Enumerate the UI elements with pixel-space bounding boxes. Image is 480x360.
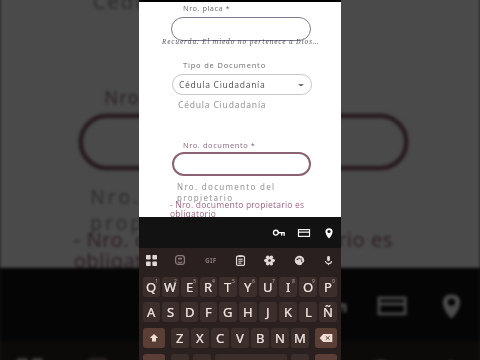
button[interactable]: D (181, 302, 198, 322)
staticText: Cédula Ciudadanía (178, 99, 267, 111)
button[interactable]: Clipboard (235, 255, 246, 266)
staticText: Recuerda: El miedo no pertenece a Dios… (162, 37, 320, 46)
button[interactable]: H (239, 302, 257, 322)
staticText: 8 (292, 278, 295, 285)
button[interactable]: N (271, 328, 289, 348)
staticText: A (147, 303, 156, 321)
staticText: O (303, 278, 314, 296)
staticText: X (196, 329, 204, 347)
button[interactable]: GIF (204, 254, 217, 267)
staticText: 4 (212, 278, 215, 285)
button[interactable]: Keyboard modes (17, 358, 43, 360)
button[interactable]: GIF (154, 356, 185, 360)
staticText: Nro. documento del propietario (90, 182, 325, 235)
staticText: 7 (272, 278, 275, 285)
staticText: Ñ (323, 303, 333, 321)
button[interactable]: Saved payment card (378, 292, 406, 320)
button[interactable]: Saved address (323, 227, 335, 239)
button[interactable]: C (211, 328, 229, 348)
button[interactable]: W (162, 277, 179, 297)
button[interactable]: Saved password (273, 227, 285, 239)
button[interactable]: Keyboard modes (146, 255, 157, 266)
staticText: T (224, 278, 232, 296)
button[interactable] (78, 113, 409, 170)
staticText: GIF (205, 256, 217, 265)
button[interactable]: P (319, 277, 337, 297)
button[interactable]: K (279, 302, 297, 322)
button[interactable]: Shift (143, 328, 165, 348)
button[interactable]: G (219, 302, 237, 322)
staticText: - Nro. documento propietario es obligato… (170, 199, 305, 219)
button[interactable]: M (291, 328, 309, 348)
staticText: U (263, 278, 273, 296)
button[interactable]: U (259, 277, 277, 297)
button[interactable]: Backspace (315, 328, 337, 348)
staticText: P (324, 278, 332, 296)
staticText: Nro. documento * (183, 140, 256, 150)
button[interactable]: Cédula Ciudadanía (172, 74, 312, 95)
staticText: K (284, 303, 293, 321)
staticText: Cédula Ciudadanía (179, 79, 266, 91)
button[interactable]: L (299, 302, 317, 322)
button[interactable]: Settings (297, 358, 323, 360)
button[interactable]: Theme (294, 255, 305, 266)
button[interactable]: Symbols (143, 354, 165, 360)
button[interactable]: S (162, 302, 179, 322)
staticText: Z (176, 329, 184, 347)
staticText: Nro. documento del propietario (177, 181, 276, 203)
button[interactable]: T (219, 277, 237, 297)
button[interactable]: B (251, 328, 269, 348)
button[interactable]: Settings (264, 255, 275, 266)
button[interactable]: I (279, 277, 297, 297)
button[interactable]: Saved address (437, 292, 466, 320)
button[interactable]: Stickers (86, 358, 109, 360)
staticText: 9 (312, 278, 315, 285)
button[interactable]: J (259, 302, 277, 322)
staticText: 6 (252, 278, 255, 285)
staticText: M (294, 329, 306, 347)
button[interactable] (171, 17, 311, 41)
button[interactable] (172, 152, 311, 176)
button[interactable]: F (200, 302, 217, 322)
button[interactable]: Enter (315, 354, 337, 360)
button[interactable]: R (200, 277, 217, 297)
staticText: Q (146, 278, 157, 296)
staticText: G (223, 303, 233, 321)
button[interactable]: O (299, 277, 317, 297)
button[interactable]: A (143, 302, 160, 322)
staticText: Nro. documento * (105, 85, 278, 109)
staticText: 2 (174, 278, 177, 285)
staticText: R (204, 278, 213, 296)
button[interactable]: Voice input (323, 255, 334, 266)
staticText: Tipo de Documento (183, 60, 266, 70)
staticText: Y (244, 278, 252, 296)
button[interactable]: E (181, 277, 198, 297)
button[interactable]: Q (143, 277, 160, 297)
button[interactable]: V (231, 328, 249, 348)
button[interactable]: Saved password (318, 292, 347, 320)
staticText: L (305, 303, 312, 321)
staticText: Nro. placa * (183, 3, 231, 13)
staticText: - Nro. documento propietario es obligato… (74, 225, 394, 273)
staticText: E (186, 278, 194, 296)
staticText: S (167, 303, 175, 321)
button[interactable]: Y (239, 277, 257, 297)
staticText: F (205, 303, 212, 321)
button[interactable]: Stickers (175, 255, 185, 265)
button[interactable]: Z (171, 328, 189, 348)
button[interactable]: Ñ (319, 302, 337, 322)
button[interactable]: X (191, 328, 209, 348)
staticText: D (185, 303, 195, 321)
staticText: J (266, 303, 270, 321)
button[interactable]: Theme (368, 358, 394, 360)
staticText: W (164, 278, 177, 296)
button[interactable]: Saved payment card (298, 227, 310, 239)
staticText: Cédula Ciudadanía (93, 0, 304, 16)
staticText: I (286, 278, 291, 296)
